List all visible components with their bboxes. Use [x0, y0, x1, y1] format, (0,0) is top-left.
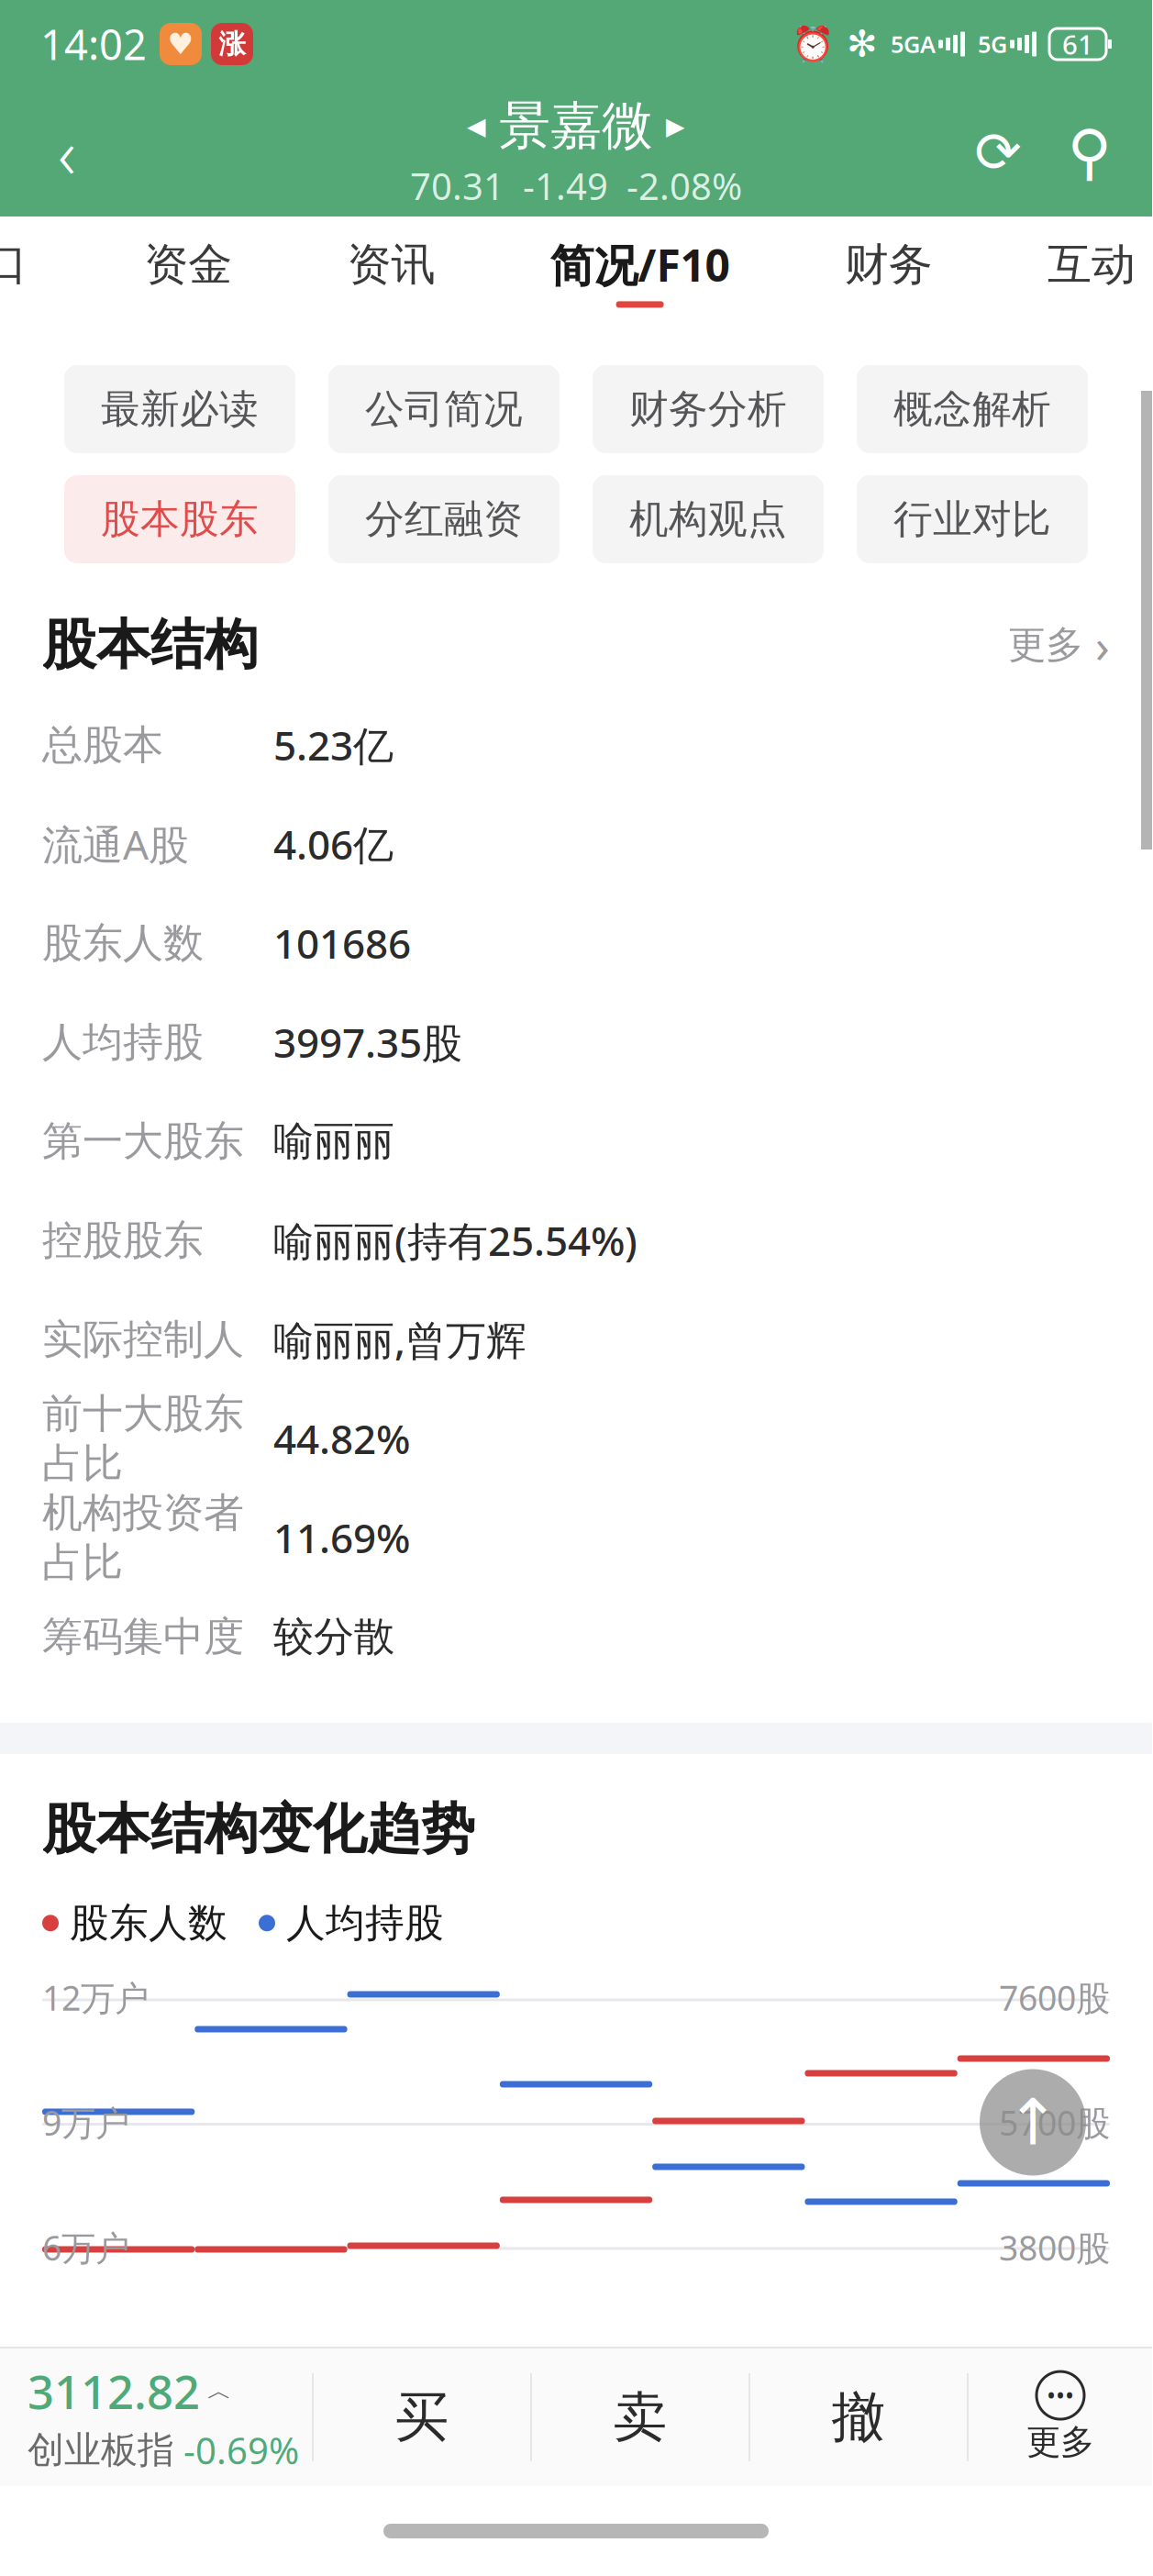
button[interactable]: 买 — [314, 2348, 530, 2486]
staticText: ◀ — [467, 112, 486, 140]
staticText: 股本结构 — [42, 612, 259, 678]
staticText: ✻ — [847, 23, 878, 65]
staticText: › — [1083, 614, 1110, 676]
staticText: 分红融资 — [365, 495, 523, 543]
staticText: 互动 — [1048, 238, 1136, 292]
staticText: 喻丽丽 — [273, 1116, 394, 1166]
staticText: 3997.35股 — [273, 1015, 462, 1069]
staticText: 实际控制人 — [42, 1315, 244, 1364]
button[interactable]: 股本结构 — [42, 594, 1110, 695]
staticText: 3800股 — [999, 2225, 1110, 2270]
staticText: 财务分析 — [629, 385, 787, 433]
button[interactable]: 卖 — [532, 2348, 748, 2486]
staticText: 喻丽丽,曾万辉 — [273, 1313, 527, 1366]
staticText: 涨 — [219, 28, 245, 61]
button[interactable]: 股本股东 — [64, 475, 295, 563]
staticText: 控股股东 — [42, 1216, 204, 1265]
button[interactable]: 口 — [0, 228, 29, 315]
staticText: 7600股 — [999, 1975, 1110, 2020]
staticText: 人均持股 — [286, 1899, 444, 1947]
staticText: 5700股 — [999, 2100, 1110, 2145]
staticText: 较分散 — [273, 1612, 394, 1661]
staticText: 更多 — [1008, 622, 1083, 668]
button[interactable]: 撤 — [750, 2348, 967, 2486]
staticText: 创业板指 — [28, 2427, 174, 2473]
staticText: ‹ — [58, 107, 76, 198]
staticText: ♥ — [167, 27, 194, 61]
staticText: 景嘉微 — [499, 94, 653, 158]
button[interactable]: 返回 — [17, 102, 117, 203]
staticText: 101686 — [273, 916, 411, 970]
button[interactable]: 机构观点 — [593, 475, 824, 563]
staticText: 机构观点 — [629, 495, 787, 543]
staticText: 4.06亿 — [273, 817, 394, 871]
button[interactable]: 刷新 — [952, 106, 1044, 198]
staticText: 撤 — [831, 2384, 886, 2450]
button[interactable]: 搜索 — [1044, 106, 1136, 198]
button[interactable]: 公司简况 — [328, 365, 560, 453]
button[interactable]: 资讯 — [347, 228, 435, 315]
staticText: 5G — [978, 29, 1007, 59]
staticText: 前十大股东占比 — [42, 1389, 244, 1488]
button[interactable]: 最新必读 — [64, 365, 295, 453]
staticText: 股东人数 — [70, 1899, 227, 1947]
staticText: 简况/F10 — [550, 235, 730, 294]
staticText: 5GA — [891, 29, 936, 59]
staticText: 流通A股 — [42, 817, 189, 871]
staticText: 61 — [1062, 26, 1093, 62]
staticText: 口 — [0, 238, 28, 292]
staticText: ⚲ — [1067, 118, 1112, 187]
staticText: 3112.82 — [28, 2360, 200, 2422]
staticText: 股东人数 — [42, 918, 204, 968]
button[interactable]: 概念解析 — [857, 365, 1088, 453]
staticText: 财务 — [845, 238, 933, 292]
staticText: 资金 — [144, 238, 232, 292]
staticText: 第一大股东 — [42, 1116, 244, 1166]
button[interactable]: 资金 — [144, 228, 232, 315]
staticText: 股本结构变化趋势 — [42, 1796, 475, 1862]
staticText: 资讯 — [347, 238, 435, 292]
staticText: ••• — [1047, 2379, 1074, 2412]
staticText: -0.69% — [183, 2426, 299, 2474]
staticText: 5.23亿 — [273, 718, 394, 772]
staticText: 行业对比 — [893, 495, 1051, 543]
button[interactable]: 财务 — [845, 228, 933, 315]
staticText: 44.82% — [273, 1412, 410, 1465]
staticText: 公司简况 — [365, 385, 523, 433]
button[interactable]: 财务分析 — [593, 365, 824, 453]
staticText: 总股本 — [42, 720, 163, 770]
staticText: 筹码集中度 — [42, 1612, 244, 1661]
staticText: 买 — [395, 2384, 449, 2450]
staticText: 11.69% — [273, 1511, 410, 1564]
staticText: ▶ — [666, 112, 685, 140]
staticText: 14:02 — [40, 16, 147, 72]
staticText: ↑ — [1006, 2086, 1059, 2158]
button[interactable]: 3112.82 — [0, 2348, 312, 2486]
staticText: 卖 — [613, 2384, 667, 2450]
staticText: 人均持股 — [42, 1017, 204, 1067]
button[interactable]: 互动 — [1048, 228, 1136, 315]
button[interactable]: 简况/F10 — [550, 226, 730, 317]
staticText: ⏰ — [792, 24, 834, 64]
staticText: ⟳ — [975, 120, 1021, 184]
button[interactable]: ••• — [969, 2348, 1152, 2486]
staticText: 机构投资者占比 — [42, 1488, 244, 1587]
staticText: 70.31 -1.49 -2.08% — [410, 161, 742, 210]
staticText: 更多 — [1026, 2421, 1094, 2463]
staticText: 喻丽丽(持有25.54%) — [273, 1214, 637, 1267]
button[interactable]: 行业对比 — [857, 475, 1088, 563]
staticText: 6万户 — [42, 2225, 129, 2270]
staticText: ︿ — [207, 2376, 232, 2406]
staticText: 最新必读 — [101, 385, 259, 433]
staticText: 12万户 — [42, 1975, 149, 2020]
staticText: 股本股东 — [101, 495, 259, 543]
staticText: 9万户 — [42, 2100, 129, 2145]
button[interactable]: 分红融资 — [328, 475, 560, 563]
staticText: 概念解析 — [893, 385, 1051, 433]
button[interactable]: 回到顶部 — [980, 2069, 1086, 2176]
